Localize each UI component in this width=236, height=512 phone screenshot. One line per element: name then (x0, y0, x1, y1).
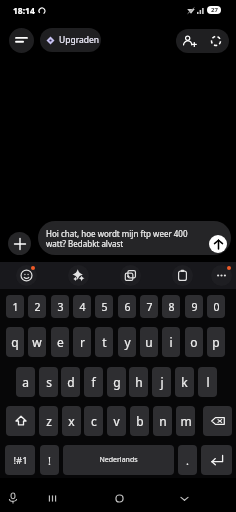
button[interactable]: c (84, 406, 103, 436)
button[interactable]: q (6, 327, 24, 357)
button[interactable]: Recent apps (41, 487, 63, 509)
staticText: 3 (57, 300, 64, 314)
button[interactable]: g (107, 367, 126, 397)
staticText: c (91, 413, 97, 429)
button[interactable]: x (62, 406, 81, 436)
button[interactable]: e (51, 327, 69, 357)
staticText: r (80, 334, 85, 350)
staticText: g (113, 374, 121, 390)
staticText: 0 (213, 300, 220, 314)
staticText: t (102, 334, 107, 350)
staticText: u (145, 334, 153, 350)
staticText: p (212, 334, 220, 350)
staticText: . (186, 453, 189, 468)
button[interactable]: i (162, 327, 180, 357)
button[interactable]: Open menu (9, 28, 34, 53)
button[interactable]: Hide keyboard (173, 487, 195, 509)
button[interactable]: Send message (209, 235, 227, 253)
staticText: m (180, 413, 192, 429)
button[interactable]: More options (208, 262, 234, 289)
button[interactable]: AI assist (65, 262, 91, 289)
button[interactable]: k (175, 367, 194, 397)
staticText: a (22, 374, 29, 390)
button[interactable]: 9 (185, 295, 203, 318)
staticText: z (46, 413, 52, 429)
button[interactable]: Emoji (13, 262, 39, 289)
button[interactable]: t (95, 327, 113, 357)
button[interactable]: 8 (162, 295, 180, 318)
staticText: 27 (211, 6, 218, 14)
staticText: 18:14 (13, 5, 35, 17)
button[interactable]: o (185, 327, 203, 357)
button[interactable]: z (39, 406, 58, 436)
button[interactable]: p (207, 327, 225, 357)
staticText: y (124, 334, 131, 350)
staticText: 4 (79, 300, 86, 314)
button[interactable]: w (28, 327, 46, 357)
staticText: f (91, 374, 96, 390)
button[interactable]: Add attachment (8, 232, 31, 255)
button[interactable]: 0 (207, 295, 225, 318)
button[interactable]: f (84, 367, 103, 397)
staticText: x (68, 413, 75, 429)
button[interactable]: v (107, 406, 126, 436)
staticText: l (206, 374, 210, 390)
button[interactable]: l (198, 367, 217, 397)
staticText: o (190, 334, 198, 350)
button[interactable]: 7 (140, 295, 158, 318)
button[interactable]: a (16, 367, 35, 397)
staticText: d (67, 374, 75, 390)
staticText: ! (48, 453, 51, 468)
button[interactable]: s (39, 367, 58, 397)
button[interactable]: Voice input (2, 487, 24, 509)
button[interactable]: b (130, 406, 149, 436)
staticText: Hoi chat, hoe wordt mijn ftp weer 400 wa… (46, 228, 201, 250)
button[interactable]: Nederlands (63, 445, 174, 475)
button[interactable]: Backspace (203, 406, 232, 436)
staticText: s (46, 374, 52, 390)
button[interactable]: Temporary chat (202, 29, 229, 53)
button[interactable]: h (129, 367, 148, 397)
staticText: 1 (12, 300, 19, 314)
button[interactable]: 1 (6, 295, 24, 318)
button[interactable]: Stickers (117, 262, 143, 289)
button[interactable]: m (176, 406, 195, 436)
staticText: j (160, 374, 164, 390)
button[interactable]: y (118, 327, 136, 357)
button[interactable]: u (140, 327, 158, 357)
staticText: w (32, 334, 42, 350)
staticText: 9 (191, 300, 198, 314)
staticText: b (136, 413, 144, 429)
button[interactable]: d (61, 367, 80, 397)
staticText: k (181, 374, 188, 390)
button[interactable]: Clipboard (169, 262, 195, 289)
button[interactable]: Upgraden (40, 28, 101, 52)
button[interactable]: 2 (28, 295, 46, 318)
staticText: 5 (101, 300, 108, 314)
button[interactable]: r (73, 327, 91, 357)
button[interactable]: n (153, 406, 172, 436)
staticText: 8 (168, 300, 175, 314)
staticText: i (169, 334, 173, 350)
button[interactable]: 5 (95, 295, 113, 318)
button[interactable]: Enter (201, 445, 232, 475)
button[interactable]: Hoi chat, hoe wordt mijn ftp weer 400 wa… (38, 221, 231, 255)
button[interactable]: 3 (51, 295, 69, 318)
staticText: Nederlands (99, 455, 138, 465)
button[interactable]: ! (40, 445, 59, 475)
button[interactable]: j (152, 367, 171, 397)
staticText: q (11, 334, 19, 350)
button[interactable]: !#1 (5, 445, 35, 475)
staticText: h (135, 374, 143, 390)
staticText: !#1 (13, 454, 28, 467)
staticText: n (159, 413, 167, 429)
staticText: 7 (146, 300, 153, 314)
staticText: v (113, 413, 120, 429)
button[interactable]: . (178, 445, 197, 475)
button[interactable]: 4 (73, 295, 91, 318)
staticText: 2 (34, 300, 41, 314)
button[interactable]: Shift (6, 406, 35, 436)
button[interactable]: Home (108, 487, 130, 509)
button[interactable]: 6 (118, 295, 136, 318)
button[interactable]: Share chat (176, 29, 202, 53)
